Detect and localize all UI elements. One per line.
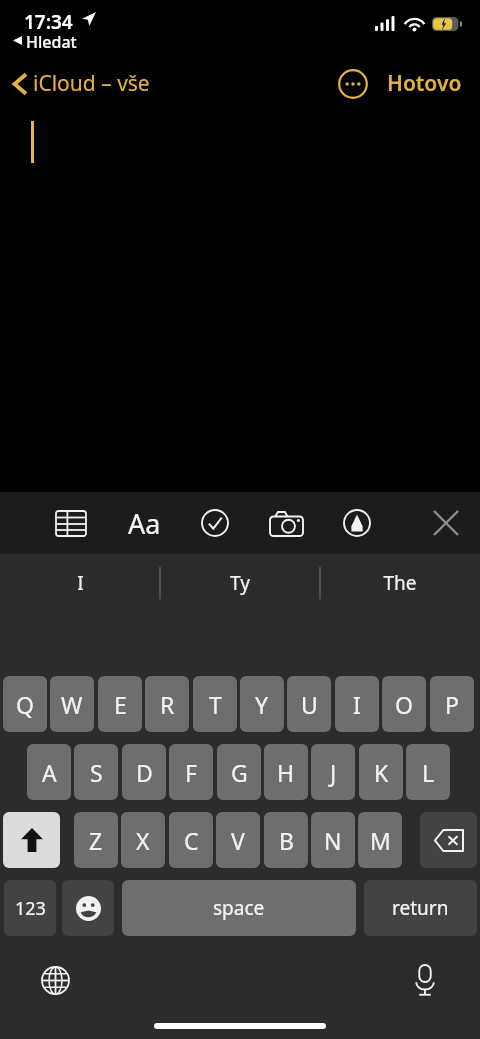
staticText: B <box>279 825 294 856</box>
button[interactable]: I <box>335 676 379 732</box>
staticText: Z <box>89 825 103 856</box>
staticText: Q <box>16 689 34 720</box>
button[interactable]: Q <box>3 676 47 732</box>
button[interactable]: return <box>364 880 477 936</box>
button[interactable]: iCloud – vše <box>9 63 154 104</box>
button[interactable]: X <box>121 812 165 868</box>
button[interactable]: K <box>359 744 403 800</box>
button[interactable]: I <box>0 554 160 612</box>
staticText: T <box>209 689 222 720</box>
button[interactable]: 123 <box>4 880 56 936</box>
button[interactable]: U <box>287 676 331 732</box>
button[interactable]: S <box>74 744 118 800</box>
staticText: K <box>374 757 389 788</box>
staticText: M <box>370 825 391 856</box>
button[interactable]: T <box>193 676 237 732</box>
button[interactable]: D <box>122 744 166 800</box>
staticText: The <box>383 570 417 596</box>
button[interactable]: R <box>145 676 189 732</box>
staticText: V <box>231 825 245 856</box>
button[interactable]: E <box>98 676 142 732</box>
button[interactable]: M <box>358 812 402 868</box>
button[interactable]: Table <box>48 500 94 546</box>
button[interactable]: Markup <box>334 500 380 546</box>
staticText: O <box>395 689 413 720</box>
button[interactable]: Backspace <box>420 812 477 868</box>
button[interactable]: W <box>50 676 94 732</box>
staticText: U <box>301 689 318 720</box>
staticText: Ty <box>230 570 250 596</box>
button[interactable]: Change keyboard <box>32 957 78 1003</box>
staticText: space <box>213 895 265 921</box>
button[interactable]: Checklist <box>192 500 238 546</box>
button[interactable]: The <box>320 554 480 612</box>
button[interactable]: Y <box>240 676 284 732</box>
staticText: J <box>330 757 337 788</box>
button[interactable]: O <box>382 676 426 732</box>
staticText: L <box>422 757 435 788</box>
staticText: F <box>185 757 197 788</box>
button[interactable]: space <box>122 880 356 936</box>
button[interactable]: Emoji <box>62 880 114 936</box>
button[interactable]: Ty <box>160 554 320 612</box>
button[interactable]: Aa <box>119 498 169 548</box>
staticText: R <box>160 689 175 720</box>
staticText: D <box>136 757 153 788</box>
staticText: W <box>61 689 83 720</box>
button[interactable]: A <box>27 744 71 800</box>
button[interactable]: Z <box>74 812 118 868</box>
button[interactable]: G <box>217 744 261 800</box>
staticText: iCloud – vše <box>33 69 150 98</box>
staticText: I <box>77 570 84 596</box>
staticText: H <box>277 757 295 788</box>
button[interactable]: L <box>406 744 450 800</box>
button[interactable]: Close toolbar <box>424 501 468 545</box>
button[interactable]: Dictate <box>402 957 448 1003</box>
staticText: Aa <box>128 505 161 542</box>
button[interactable]: H <box>264 744 308 800</box>
staticText: Hledat <box>26 31 77 53</box>
staticText: G <box>231 757 248 788</box>
button[interactable]: Hotovo <box>381 61 468 106</box>
staticText: Y <box>255 689 269 720</box>
staticText: return <box>392 895 449 921</box>
button[interactable]: V <box>216 812 260 868</box>
button[interactable]: Camera <box>262 499 310 547</box>
button[interactable]: F <box>169 744 213 800</box>
staticText: Hotovo <box>387 69 462 98</box>
staticText: C <box>184 825 199 856</box>
button[interactable]: C <box>169 812 213 868</box>
staticText: 123 <box>15 896 46 921</box>
button[interactable]: B <box>264 812 308 868</box>
staticText: A <box>42 757 57 788</box>
staticText: N <box>324 825 342 856</box>
staticText: I <box>353 689 361 720</box>
staticText: E <box>114 689 127 720</box>
button[interactable]: P <box>430 676 474 732</box>
staticText: P <box>445 689 459 720</box>
button[interactable]: N <box>311 812 355 868</box>
staticText: 17:34 <box>24 9 73 35</box>
button[interactable]: More options <box>333 64 373 104</box>
staticText: X <box>136 825 150 856</box>
button[interactable]: Shift <box>3 812 60 868</box>
staticText: S <box>90 757 103 788</box>
button[interactable]: J <box>311 744 355 800</box>
